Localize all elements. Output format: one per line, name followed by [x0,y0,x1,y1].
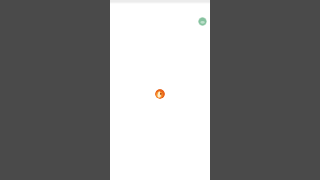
other: App logo [155,89,165,99]
button[interactable]: Account [198,17,207,26]
